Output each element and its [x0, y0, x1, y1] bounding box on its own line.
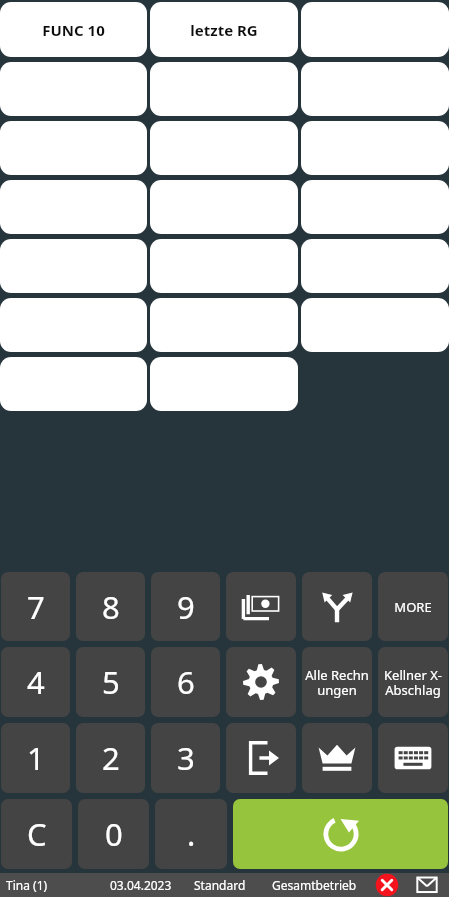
staticText: C — [27, 813, 47, 855]
button[interactable]: Keyboard — [378, 723, 448, 793]
staticText: 2 — [102, 737, 120, 779]
button[interactable]: Alle Rechnungen — [302, 647, 372, 717]
button[interactable] — [301, 121, 449, 175]
staticText: . — [187, 813, 196, 855]
staticText: 3 — [177, 737, 195, 779]
button[interactable]: Refresh — [233, 799, 448, 869]
staticText: 6 — [177, 661, 195, 703]
button[interactable]: Kellner X-Abschlag — [378, 647, 448, 717]
button[interactable]: Messages — [407, 873, 447, 897]
button[interactable]: 1 — [1, 723, 70, 793]
button[interactable]: 0 — [78, 799, 149, 869]
staticText: Standard — [194, 877, 246, 893]
staticText: 0 — [105, 813, 123, 855]
button[interactable]: Manager — [302, 723, 372, 793]
button[interactable] — [301, 239, 449, 293]
staticText: 9 — [177, 586, 195, 628]
button[interactable]: 7 — [1, 572, 70, 641]
staticText: FUNC 10 — [42, 20, 105, 40]
button[interactable] — [0, 180, 147, 234]
button[interactable]: 6 — [151, 647, 220, 717]
staticText: 8 — [102, 586, 120, 628]
staticText: letzte RG — [190, 20, 258, 40]
button[interactable] — [301, 180, 449, 234]
button[interactable]: C — [1, 799, 72, 869]
button[interactable]: 3 — [151, 723, 220, 793]
button[interactable] — [150, 239, 298, 293]
button[interactable] — [0, 357, 147, 411]
button[interactable]: 8 — [76, 572, 145, 641]
button[interactable]: FUNC 10 — [0, 2, 147, 57]
button[interactable]: Cash — [226, 572, 296, 641]
button[interactable] — [150, 180, 298, 234]
staticText: MORE — [394, 598, 432, 616]
button[interactable] — [0, 62, 147, 116]
button[interactable]: Close — [367, 873, 407, 897]
button[interactable]: Split — [302, 572, 372, 641]
staticText: Kellner X-Abschlag — [380, 666, 446, 699]
button[interactable]: MORE — [378, 572, 448, 641]
button[interactable]: . — [155, 799, 227, 869]
staticText: Alle Rechnungen — [304, 666, 370, 699]
button[interactable]: 2 — [76, 723, 145, 793]
button[interactable]: letzte RG — [150, 2, 298, 57]
button[interactable]: 9 — [151, 572, 220, 641]
button[interactable] — [301, 2, 449, 57]
button[interactable] — [0, 239, 147, 293]
button[interactable] — [301, 62, 449, 116]
staticText: Gesamtbetrieb — [272, 877, 357, 893]
button[interactable]: Settings — [226, 647, 296, 717]
button[interactable] — [150, 298, 298, 352]
staticText: Tina (1) — [6, 877, 48, 893]
staticText: 5 — [102, 661, 120, 703]
button[interactable]: Logout — [226, 723, 296, 793]
button[interactable]: 4 — [1, 647, 70, 717]
button[interactable] — [0, 298, 147, 352]
button[interactable] — [150, 62, 298, 116]
button[interactable] — [150, 357, 298, 411]
button[interactable] — [301, 298, 449, 352]
staticText: 03.04.2023 — [110, 877, 172, 893]
staticText: 7 — [27, 586, 45, 628]
button[interactable] — [150, 121, 298, 175]
staticText: 4 — [27, 661, 45, 703]
button[interactable]: 5 — [76, 647, 145, 717]
staticText: 1 — [27, 737, 45, 779]
button[interactable] — [0, 121, 147, 175]
